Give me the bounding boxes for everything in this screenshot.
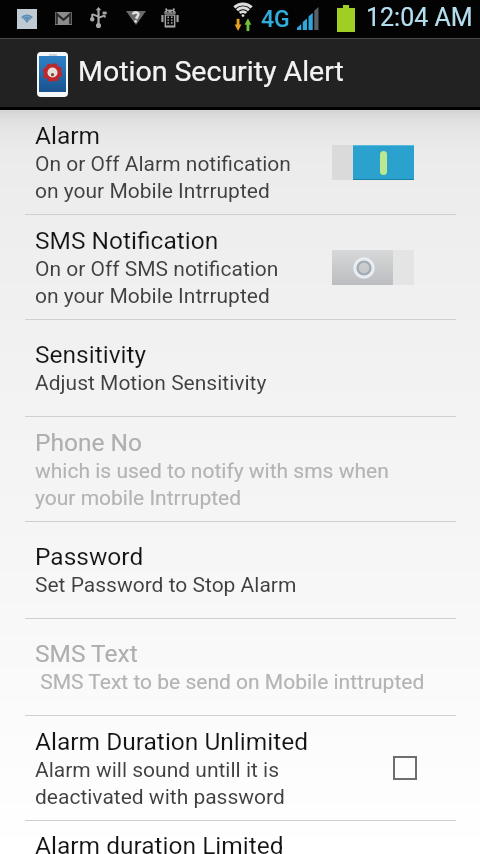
staticText: which is used to notify with sms when yo… [35,459,389,510]
staticText: On or Off Alarm notification on your Mob… [35,152,291,203]
staticText: 12:04 AM [366,3,473,32]
button[interactable]: SMS Notification [0,215,480,319]
staticText: Sensitivity [35,340,147,369]
staticText: Alarm Duration Unlimited [35,727,309,756]
staticText: Alarm will sound untill it is deactivate… [35,758,285,809]
button[interactable]: Phone No [0,417,480,521]
button[interactable]: Alarm on [332,145,414,180]
staticText: SMS Text to be send on Mobile inttrupted [35,670,425,695]
staticText: Alarm [35,121,101,150]
staticText: Adjust Motion Sensitivity [35,371,267,396]
button[interactable]: Password [0,522,480,618]
other: App icon [37,52,68,97]
staticText: SMS Text [35,639,138,668]
staticText: Set Password to Stop Alarm [35,573,297,598]
staticText: On or Off SMS notification on your Mobil… [35,257,279,308]
staticText: Motion Security Alert [78,55,344,88]
staticText: Alarm duration Limited [35,831,284,854]
staticText: Phone No [35,428,142,457]
staticText: 4G [261,6,290,33]
button[interactable]: SMS Text [0,619,480,715]
staticText: Password [35,542,144,571]
button[interactable]: Alarm duration Limited [0,821,480,854]
button[interactable]: SMS notification off [332,250,414,285]
staticText: SMS Notification [35,226,219,255]
button[interactable]: Alarm [0,110,480,214]
button[interactable]: Alarm Duration Unlimited [0,716,480,820]
button[interactable]: Alarm duration unlimited checkbox [393,756,417,780]
button[interactable]: Sensitivity [0,320,480,416]
